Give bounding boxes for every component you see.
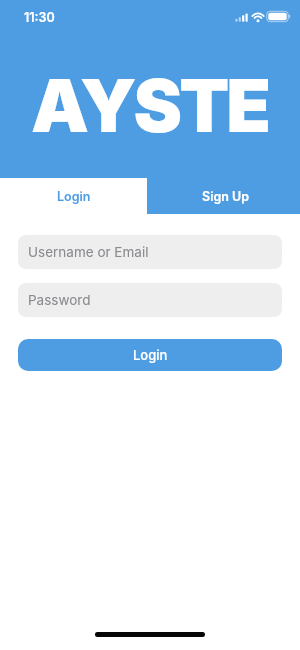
button[interactable]: Login: [0, 178, 147, 214]
staticText: 11:30: [24, 10, 55, 25]
staticText: Password: [28, 292, 91, 308]
staticText: Login: [133, 347, 168, 363]
button[interactable]: Sign Up: [147, 178, 300, 214]
staticText: Login: [57, 189, 91, 204]
button[interactable]: Login: [18, 339, 282, 371]
button[interactable]: Username or Email: [18, 235, 282, 269]
staticText: Sign Up: [202, 189, 250, 204]
staticText: AYSTE: [31, 61, 269, 149]
staticText: Username or Email: [28, 244, 149, 260]
button[interactable]: Password: [18, 283, 282, 317]
